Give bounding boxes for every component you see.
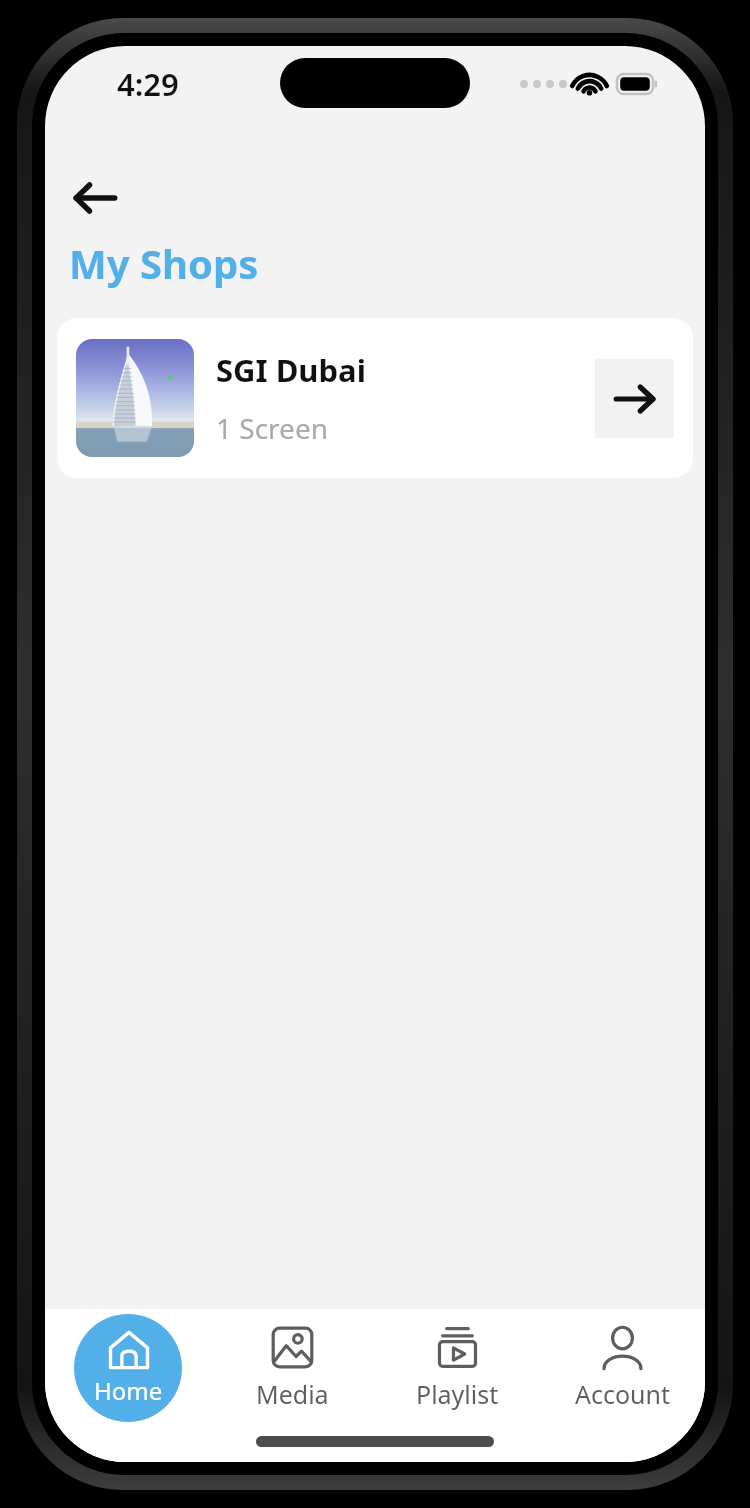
button[interactable]: Back — [63, 166, 127, 230]
staticText: 1 Screen — [216, 409, 329, 447]
button[interactable]: SGI Dubai — [57, 318, 693, 478]
staticText: My Shops — [69, 236, 259, 290]
button[interactable]: Home — [74, 1314, 182, 1422]
button[interactable]: Media — [210, 1325, 375, 1411]
button[interactable]: Open SGI Dubai — [595, 359, 674, 438]
button[interactable]: Account — [540, 1325, 705, 1411]
staticText: Media — [256, 1377, 329, 1411]
staticText: 4:29 — [117, 63, 179, 105]
button[interactable]: Playlist — [375, 1325, 540, 1411]
staticText: Account — [575, 1377, 671, 1411]
staticText: Home — [94, 1374, 163, 1407]
staticText: SGI Dubai — [216, 349, 366, 391]
staticText: Playlist — [416, 1377, 499, 1411]
